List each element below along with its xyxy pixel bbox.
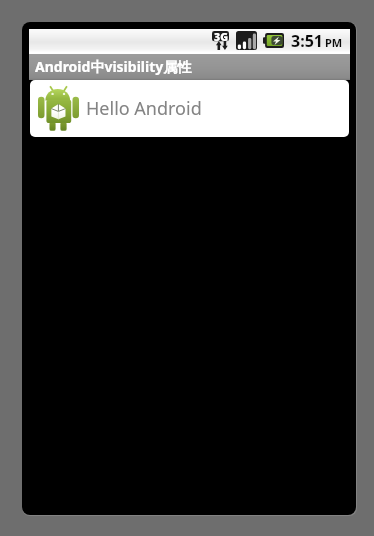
- staticText: Hello Android: [86, 96, 202, 121]
- staticText: 3G: [214, 30, 228, 44]
- other: Android app icon: [38, 86, 79, 131]
- staticText: PM: [325, 35, 343, 50]
- staticText: Android中visibility属性: [35, 57, 192, 76]
- staticText: 3:51: [291, 30, 323, 52]
- button[interactable]: Android app icon: [30, 80, 349, 137]
